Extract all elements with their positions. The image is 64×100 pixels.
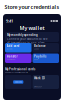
button[interactable]: ADD CARD <box>5 75 31 89</box>
staticText: $2,480 <box>34 48 39 50</box>
staticText: Pay bills <box>34 55 46 58</box>
staticText: Work ID <box>34 76 45 80</box>
staticText: Connect your accounts to see <box>7 37 48 41</box>
button[interactable]: Transfer <box>5 53 31 63</box>
staticText: ADD CARD <box>15 81 22 83</box>
staticText: Office 2024 <box>34 86 42 88</box>
staticText: Quick link <box>7 48 13 50</box>
button[interactable]: Balance <box>32 43 59 52</box>
staticText: Balance <box>34 44 46 48</box>
staticText: all transactions in one place <box>7 41 45 45</box>
staticText: Keep work credentials separate <box>5 72 28 73</box>
button[interactable]: Add card <box>5 43 31 52</box>
button[interactable]: My monthly spending <box>5 32 59 42</box>
button[interactable]: Work ID <box>32 75 59 89</box>
staticText: My wallet <box>19 24 44 32</box>
staticText: Store your credentials <box>4 3 59 11</box>
staticText: Add card <box>7 44 20 48</box>
button[interactable]: Pay bills <box>32 53 59 63</box>
staticText: 9:41 <box>6 18 13 24</box>
staticText: Send money <box>7 59 16 60</box>
staticText: Transfer <box>7 55 18 58</box>
staticText: My monthly spending <box>7 33 38 37</box>
staticText: My Professional cards <box>5 67 35 71</box>
